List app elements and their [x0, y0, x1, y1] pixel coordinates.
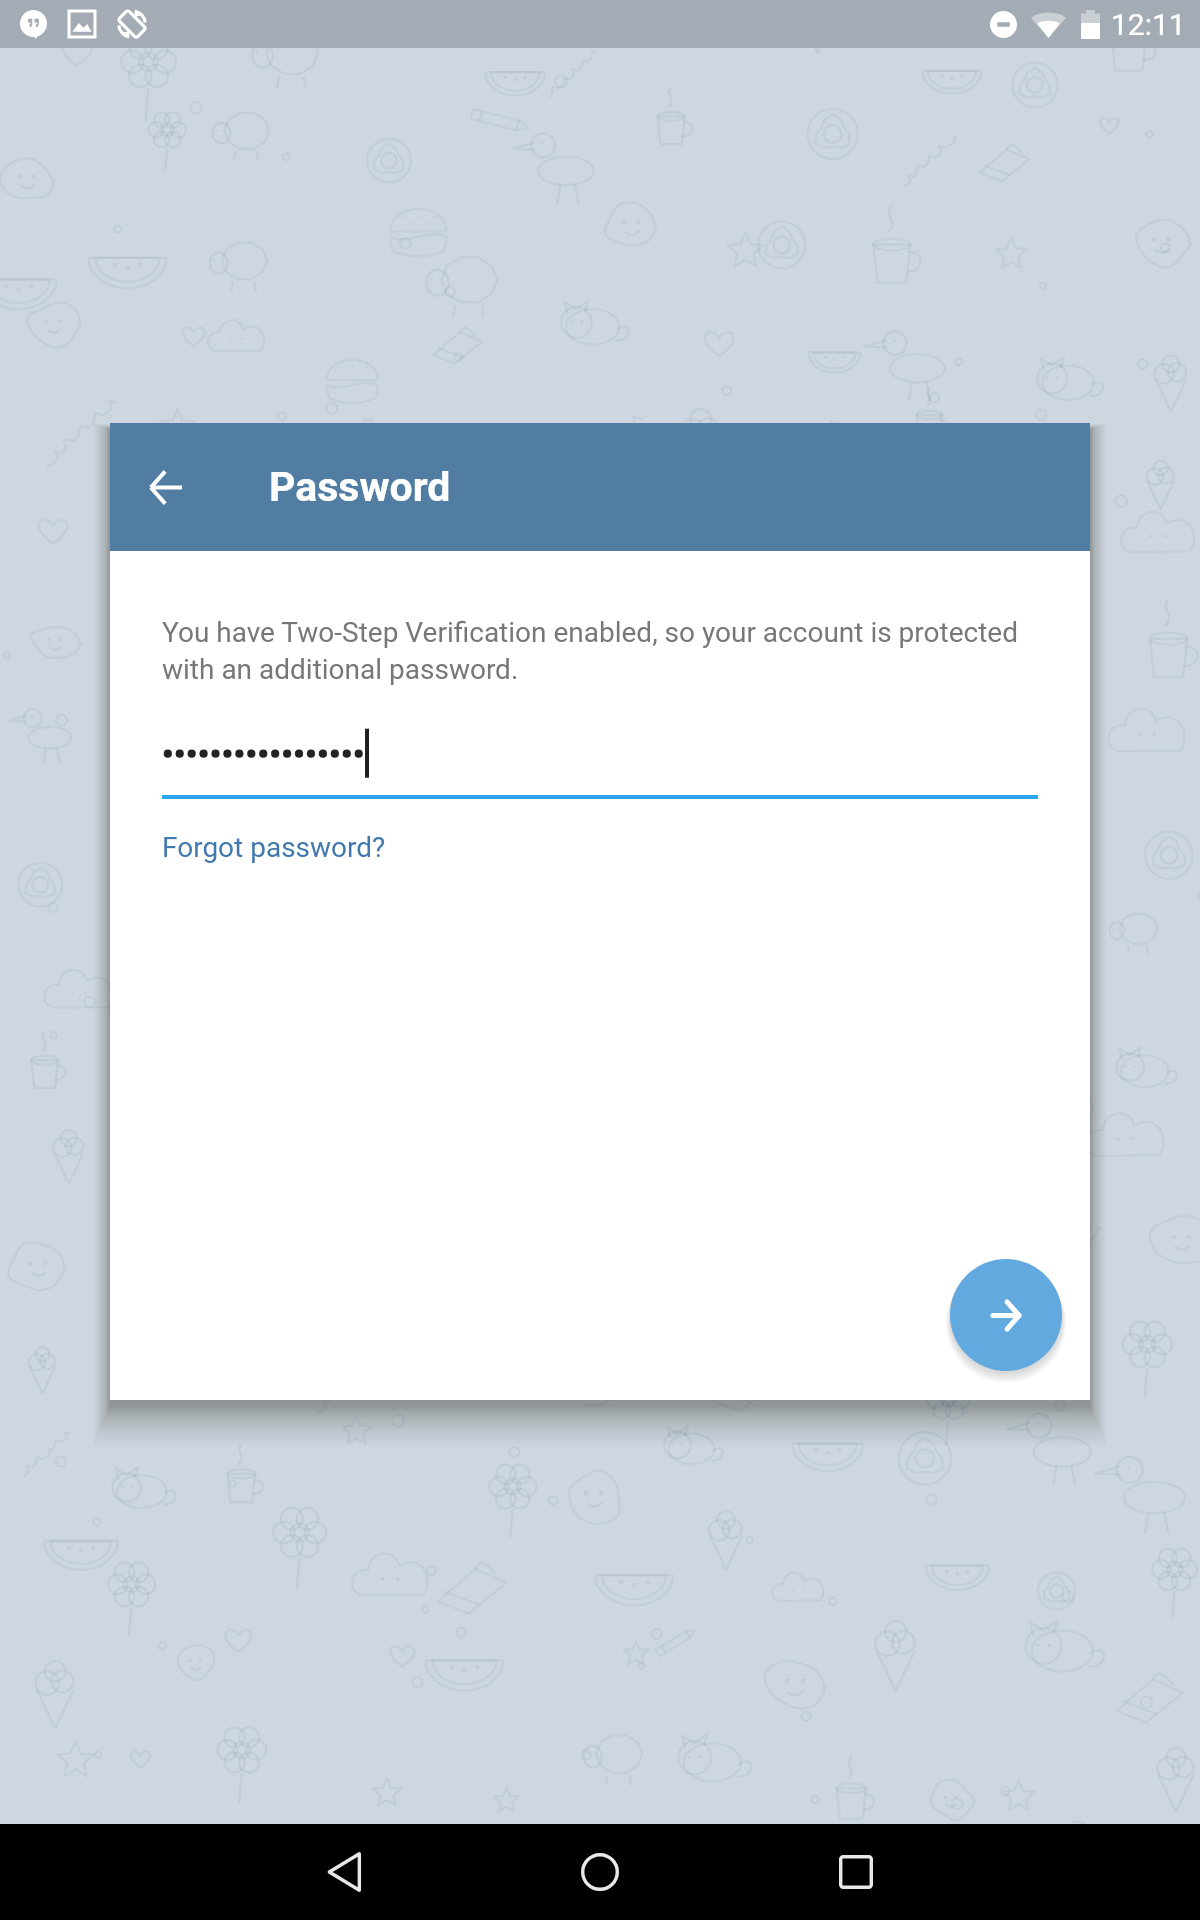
button[interactable]: Recent apps — [808, 1824, 904, 1920]
staticText: 12:11 — [1111, 7, 1186, 42]
button[interactable]: Password input field — [162, 735, 1038, 795]
staticText: Password — [269, 463, 451, 511]
button[interactable]: Submit password — [950, 1259, 1062, 1371]
button[interactable]: Forgot password? — [162, 828, 394, 873]
button[interactable]: Back — [296, 1824, 392, 1920]
staticText: Forgot password? — [162, 831, 386, 864]
button[interactable]: Home — [552, 1824, 648, 1920]
button[interactable]: Back — [110, 423, 220, 551]
staticText: You have Two-Step Verification enabled, … — [162, 616, 1038, 686]
